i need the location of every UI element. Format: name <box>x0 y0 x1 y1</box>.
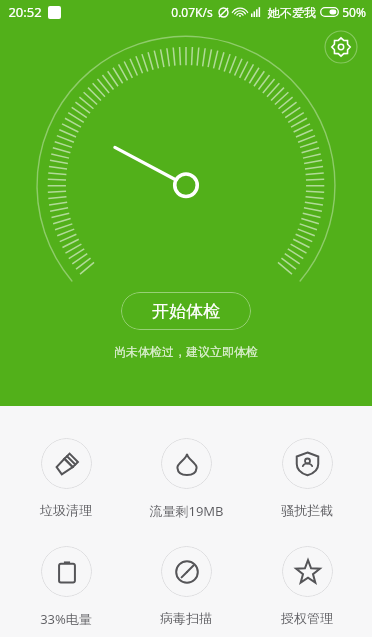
button[interactable]: 流量剩19MB <box>131 436 241 522</box>
staticText: 她不爱我 <box>268 5 316 20</box>
button[interactable]: 病毒扫描 <box>131 544 241 628</box>
staticText: 垃圾清理 <box>40 502 92 518</box>
staticText: 骚扰拦截 <box>281 502 333 518</box>
button[interactable]: Settings <box>324 30 358 64</box>
button[interactable]: 开始体检 <box>121 292 251 330</box>
staticText: 流量剩19MB <box>149 502 224 520</box>
button[interactable]: 骚扰拦截 <box>252 436 362 520</box>
staticText: 病毒扫描 <box>160 610 212 626</box>
staticText: 开始体检 <box>152 301 220 322</box>
staticText: 20:52 <box>8 3 42 21</box>
staticText: 33%电量 <box>40 610 92 628</box>
staticText: 0.07K/s <box>171 4 213 20</box>
staticText: 授权管理 <box>281 610 333 626</box>
button[interactable]: 33%电量 <box>11 544 121 630</box>
button[interactable]: 垃圾清理 <box>11 436 121 520</box>
staticText: 50% <box>342 4 366 20</box>
button[interactable]: 授权管理 <box>252 544 362 628</box>
staticText: 尚未体检过，建议立即体检 <box>114 344 258 359</box>
